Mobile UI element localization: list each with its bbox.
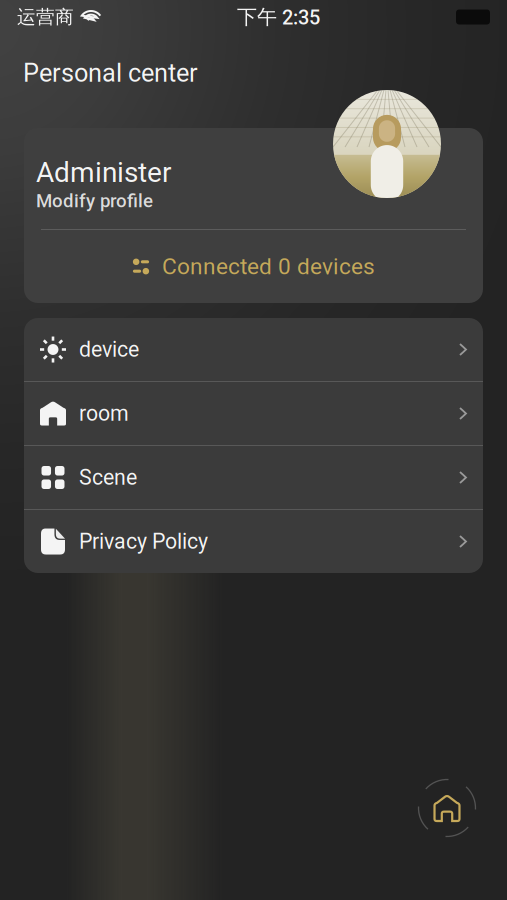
button[interactable]: Modify profile (36, 190, 153, 212)
staticText: Privacy Policy (79, 529, 208, 554)
button[interactable]: device (24, 318, 483, 381)
button[interactable]: Connected 0 devices (24, 230, 483, 303)
staticText: Administer (36, 156, 171, 189)
staticText: device (79, 337, 139, 362)
staticText: Modify profile (36, 190, 153, 212)
button[interactable]: room (24, 382, 483, 445)
staticText: Connected 0 devices (162, 253, 375, 280)
staticText: room (79, 401, 129, 426)
button[interactable]: Home (412, 773, 482, 843)
button[interactable]: Scene (24, 446, 483, 509)
staticText: Scene (79, 465, 137, 490)
staticText: 下午 2:35 (237, 4, 320, 30)
staticText: 运营商 (17, 5, 74, 29)
staticText: Personal center (23, 58, 198, 88)
button[interactable]: Privacy Policy (24, 510, 483, 573)
